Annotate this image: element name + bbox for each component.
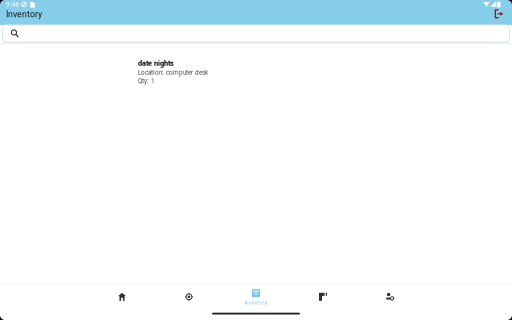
staticText: Inventory (6, 9, 42, 19)
staticText: Qty: 1 (138, 77, 155, 85)
button[interactable]: Home (101, 285, 143, 309)
staticText: Location: computer desk (138, 69, 208, 76)
staticText: date nights (138, 59, 174, 68)
button[interactable]: Log out (492, 9, 506, 25)
staticText: 9:46 (5, 0, 19, 8)
button[interactable]: Track (168, 285, 210, 309)
button[interactable]: Inventory (235, 285, 277, 309)
button[interactable]: Scan (302, 285, 344, 309)
staticText: Inventory (244, 300, 267, 306)
button[interactable]: Account (369, 285, 411, 309)
